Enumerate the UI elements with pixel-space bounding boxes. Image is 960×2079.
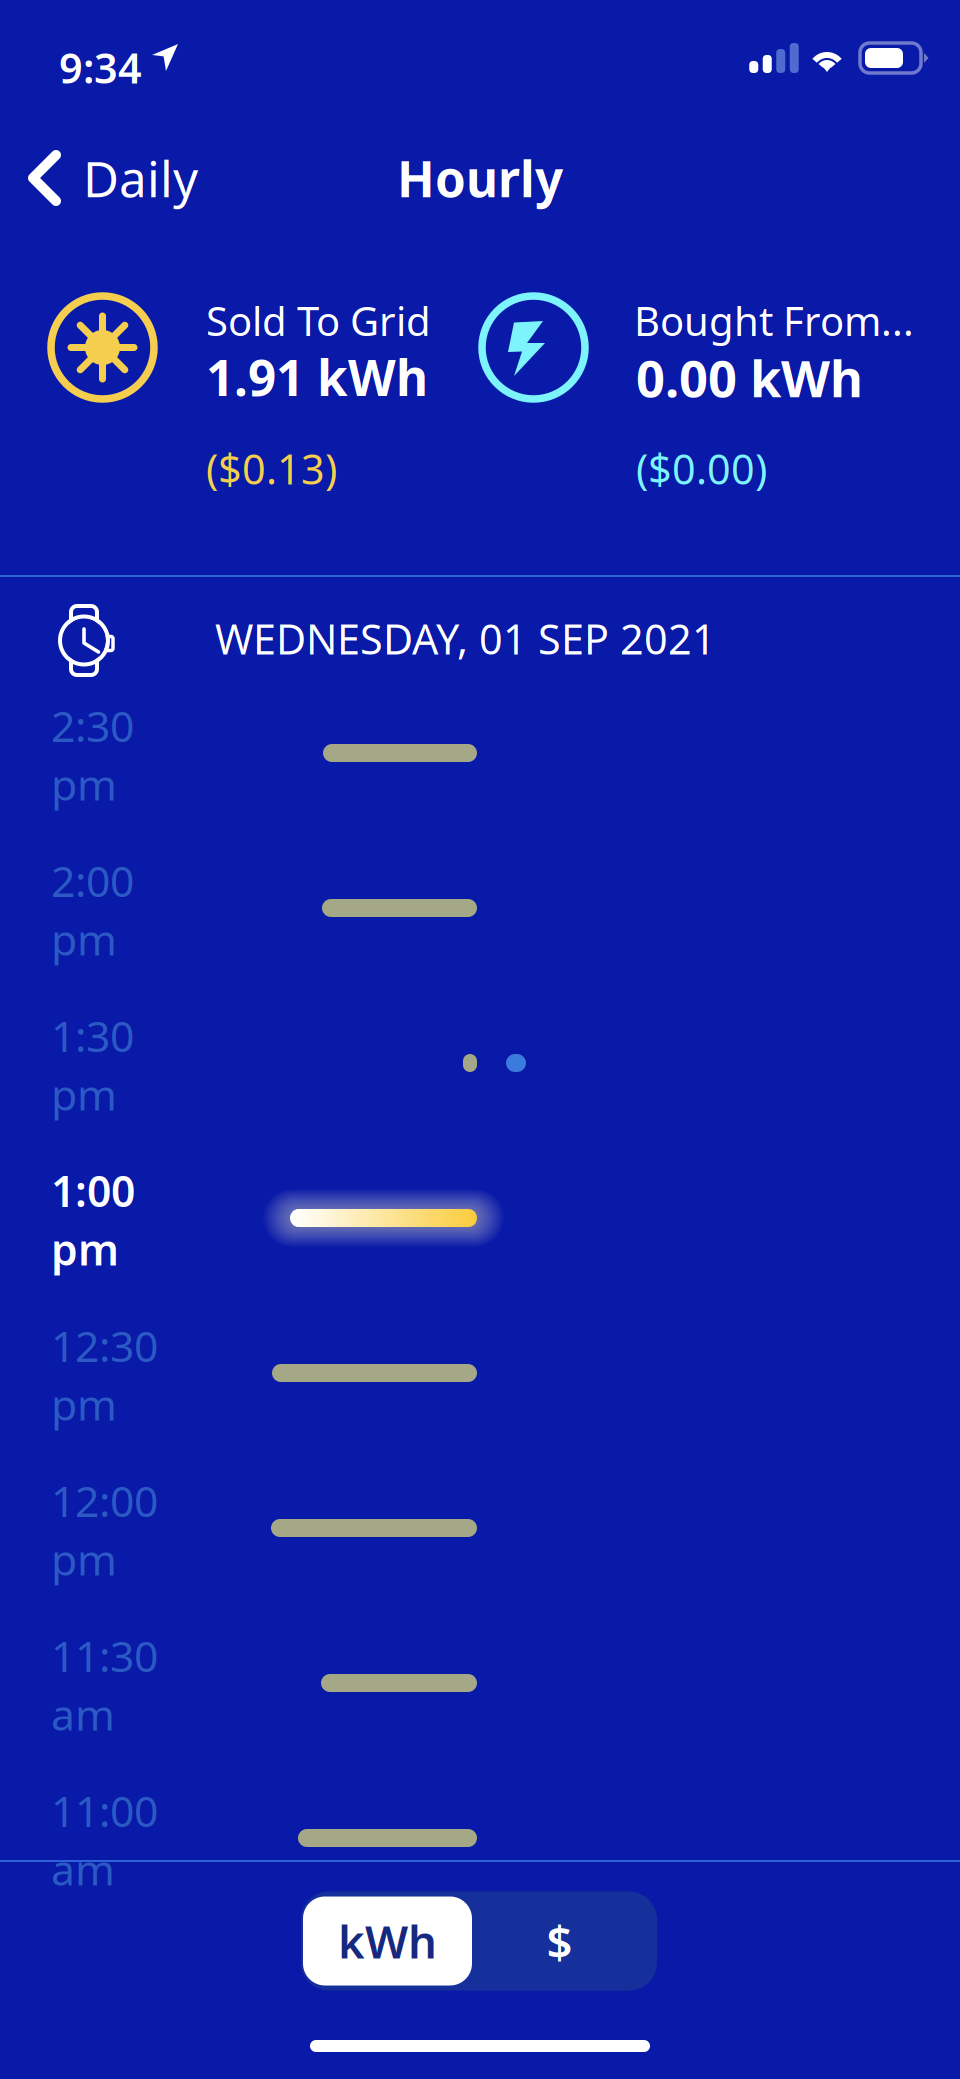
button[interactable]: kWh [303,1896,472,1985]
staticText: 11:30 [51,1627,158,1684]
staticText: 11:00 [51,1782,158,1839]
staticText: pm [51,1221,119,1277]
staticText: am [51,1686,115,1742]
staticText: ($0.00) [636,441,767,496]
button[interactable]: $ [472,1896,647,1985]
staticText: 1:30 [51,1007,134,1064]
staticText: 2:00 [51,852,134,909]
staticText: Bought From... [634,294,914,347]
staticText: ($0.13) [206,441,337,496]
staticText: 12:30 [51,1317,158,1374]
staticText: am [51,1841,115,1897]
staticText: pm [51,1066,117,1122]
staticText: 1:00 [51,1162,135,1219]
staticText: Hourly [397,145,563,211]
staticText: pm [51,911,117,967]
staticText: 12:00 [51,1472,158,1529]
staticText: pm [51,1531,117,1587]
staticText: 0.00 kWh [636,344,863,411]
staticText: 1.91 kWh [206,344,428,409]
staticText: WEDNESDAY, 01 SEP 2021 [215,611,716,666]
staticText: $ [546,1911,572,1971]
staticText: 9:34 [59,40,142,95]
staticText: 2:30 [51,697,134,754]
staticText: kWh [338,1911,437,1971]
staticText: Daily [83,145,198,211]
button[interactable]: Daily [5,132,285,224]
staticText: pm [51,756,117,812]
staticText: pm [51,1376,117,1432]
staticText: Sold To Grid [206,294,431,347]
